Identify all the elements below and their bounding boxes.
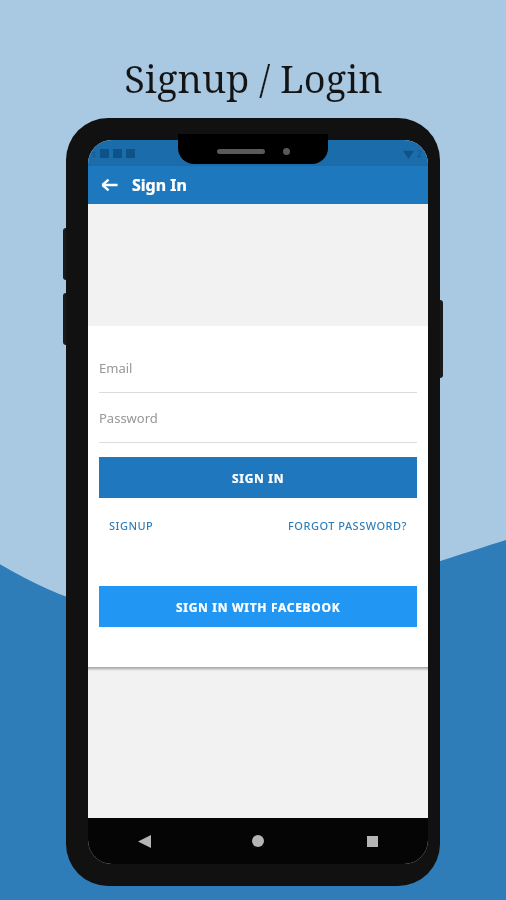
staticText: Password: [99, 409, 158, 427]
staticText: FORGOT PASSWORD?: [288, 518, 407, 533]
button[interactable]: Back: [126, 823, 162, 859]
staticText: Signup / Login: [124, 52, 383, 104]
button[interactable]: SIGN IN WITH FACEBOOK: [99, 586, 417, 627]
staticText: Sign In: [132, 174, 187, 196]
staticText: 2: [417, 147, 423, 159]
button[interactable]: SIGNUP: [109, 518, 154, 533]
staticText: s: [92, 148, 96, 159]
button[interactable]: Back: [94, 169, 126, 201]
staticText: SIGN IN: [232, 470, 285, 486]
button[interactable]: Home: [240, 823, 276, 859]
button[interactable]: SIGN IN: [99, 457, 417, 498]
staticText: SIGN IN WITH FACEBOOK: [176, 599, 341, 615]
staticText: Email: [99, 359, 133, 377]
button[interactable]: Email: [88, 343, 428, 393]
button[interactable]: Recent apps: [354, 823, 390, 859]
staticText: SIGNUP: [109, 518, 154, 533]
button[interactable]: Password: [88, 393, 428, 443]
button[interactable]: FORGOT PASSWORD?: [288, 518, 407, 533]
